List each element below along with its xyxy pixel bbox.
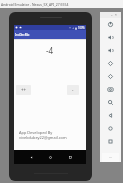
button[interactable]: Back [100, 109, 121, 122]
staticText: Android Emulator - Nexus_5X_API_27:5554 [1, 2, 69, 7]
button[interactable]: ++ [16, 85, 31, 95]
button[interactable]: Screenshot [100, 83, 121, 96]
button[interactable]: Volume up [100, 31, 121, 44]
staticText: – [111, 13, 113, 17]
staticText: vivekdubey22@gmail.com [19, 135, 67, 140]
button[interactable]: Rotate right [100, 70, 121, 83]
button[interactable]: Home [100, 122, 121, 135]
staticText: - [72, 87, 74, 93]
button[interactable]: Recents [67, 154, 73, 160]
button[interactable]: Rotate left [100, 57, 121, 70]
button[interactable]: Power [100, 18, 121, 31]
button[interactable]: Volume down [100, 44, 121, 57]
button[interactable]: Back [28, 154, 34, 160]
staticText: × [115, 13, 117, 17]
button[interactable]: - [67, 85, 79, 95]
button[interactable]: Home [47, 154, 53, 160]
staticText: IncDecMo [15, 33, 30, 37]
button[interactable]: More [102, 153, 119, 162]
staticText: App Developed By [19, 130, 53, 135]
button[interactable]: Zoom [100, 96, 121, 109]
staticText: 100% [78, 26, 85, 30]
staticText: -4 [46, 45, 54, 56]
staticText: ++ [21, 87, 27, 93]
button[interactable]: Overview [100, 135, 121, 148]
staticText: ··· [109, 155, 113, 160]
